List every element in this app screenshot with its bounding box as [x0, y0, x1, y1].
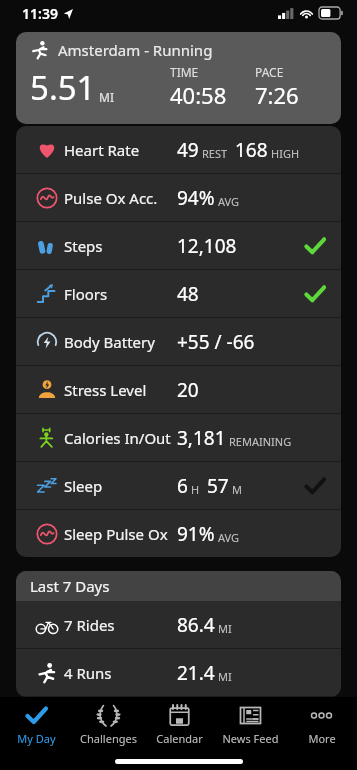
button[interactable]: News Feed [215, 697, 286, 753]
staticText: 6 [177, 473, 188, 499]
staticText: M [232, 482, 242, 497]
staticText: Sleep [64, 476, 177, 496]
staticText: Steps [64, 236, 177, 256]
staticText: PACE [255, 64, 284, 80]
button[interactable]: Challenges [72, 697, 144, 753]
staticText: 7 Rides [64, 615, 177, 635]
staticText: Pulse Ox Acc. [64, 188, 177, 208]
staticText: 40:58 [170, 80, 227, 110]
staticText: Calendar [156, 731, 203, 746]
staticText: My Day [17, 731, 56, 746]
button[interactable]: Calendar [144, 697, 215, 753]
button[interactable]: Floors [16, 270, 341, 317]
staticText: REMAINING [229, 434, 292, 449]
staticText: HIGH [271, 146, 300, 161]
staticText: 4 Runs [64, 663, 177, 683]
button[interactable]: 4 Runs [16, 649, 341, 696]
staticText: 94% [177, 185, 215, 211]
staticText: 5.51 [30, 65, 96, 110]
button[interactable]: Sleep Pulse Ox [16, 510, 341, 557]
staticText: MI [218, 669, 232, 684]
staticText: Calories In/Out [64, 428, 177, 448]
staticText: TIME [170, 64, 199, 80]
staticText: Challenges [80, 731, 137, 746]
button[interactable]: My Day [0, 697, 72, 753]
staticText: 7:26 [255, 80, 299, 110]
button[interactable]: Calories In/Out [16, 414, 341, 461]
staticText: Heart Rate [64, 140, 177, 160]
staticText: Sleep Pulse Ox [64, 524, 177, 544]
staticText: 3,181 [177, 425, 226, 451]
staticText: REST [202, 146, 228, 161]
button[interactable]: Amsterdam - Running [16, 32, 341, 124]
button[interactable]: Heart Rate [16, 126, 341, 173]
staticText: 12,108 [177, 233, 237, 259]
staticText: 91% [177, 521, 215, 547]
staticText: 168 [235, 137, 268, 163]
button[interactable]: Pulse Ox Acc. [16, 174, 341, 221]
staticText: 11:39 [22, 4, 58, 23]
staticText: 57 [207, 473, 229, 499]
staticText: 86.4 [177, 612, 215, 638]
staticText: More [308, 731, 336, 746]
staticText: MI [99, 89, 114, 105]
button[interactable]: Steps [16, 222, 341, 269]
staticText: 49 [177, 137, 199, 163]
staticText: AVG [218, 530, 240, 545]
staticText: Stress Level [64, 380, 177, 400]
staticText: +55 / -66 [177, 329, 255, 355]
staticText: AVG [218, 194, 240, 209]
staticText: Amsterdam - Running [58, 40, 213, 60]
staticText: 21.4 [177, 660, 215, 686]
button[interactable]: Body Battery [16, 318, 341, 365]
staticText: 48 [177, 281, 199, 307]
staticText: MI [218, 621, 232, 636]
staticText: H [191, 482, 200, 497]
staticText: Floors [64, 284, 177, 304]
button[interactable]: 7 Rides [16, 601, 341, 648]
staticText: Body Battery [64, 332, 177, 352]
button[interactable]: Sleep [16, 462, 341, 509]
button[interactable]: More [286, 697, 357, 753]
button[interactable]: Stress Level [16, 366, 341, 413]
staticText: News Feed [222, 731, 279, 746]
staticText: 20 [177, 377, 199, 403]
staticText: Last 7 Days [30, 576, 110, 596]
